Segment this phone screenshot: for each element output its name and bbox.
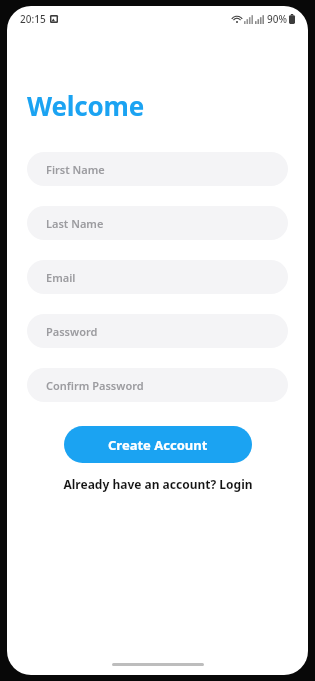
button[interactable]: Last Name: [27, 206, 288, 240]
staticText: Create Account: [108, 436, 208, 454]
staticText: 20:15: [20, 12, 46, 26]
button[interactable]: Already have an account? Login: [7, 476, 308, 492]
staticText: Password: [46, 324, 98, 339]
button[interactable]: Password: [27, 314, 288, 348]
staticText: Confirm Password: [46, 378, 144, 393]
button[interactable]: Email: [27, 260, 288, 294]
staticText: Welcome: [27, 88, 145, 123]
button[interactable]: Confirm Password: [27, 368, 288, 402]
staticText: First Name: [46, 162, 105, 177]
staticText: Last Name: [46, 216, 104, 231]
button[interactable]: Create Account: [64, 426, 252, 463]
staticText: 90%: [267, 12, 287, 26]
staticText: Email: [46, 270, 76, 285]
staticText: Already have an account? Login: [63, 476, 253, 492]
button[interactable]: First Name: [27, 152, 288, 186]
